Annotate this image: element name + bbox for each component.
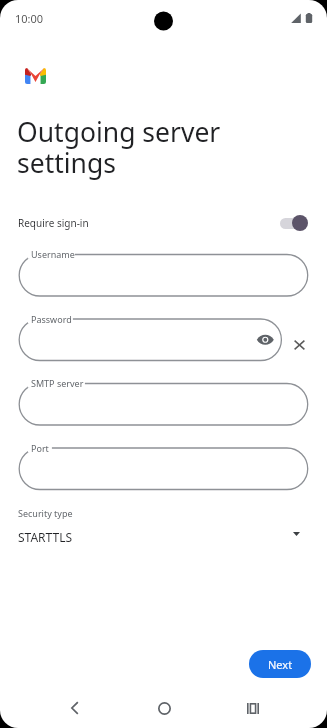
button[interactable]: Username bbox=[0, 0, 327, 728]
button[interactable]: SMTP server bbox=[0, 0, 327, 728]
staticText: Security type bbox=[18, 507, 73, 519]
staticText: Port bbox=[31, 442, 49, 454]
staticText: Username bbox=[31, 248, 75, 260]
button[interactable]: Recents bbox=[208, 688, 327, 728]
staticText: Next bbox=[268, 657, 293, 672]
button[interactable]: Port bbox=[0, 0, 327, 728]
staticText: Outgoing server settings bbox=[17, 114, 221, 181]
button[interactable]: Security type bbox=[0, 503, 327, 553]
button[interactable]: Home bbox=[118, 688, 208, 728]
staticText: Require sign-in bbox=[18, 216, 89, 230]
button[interactable]: Back bbox=[0, 688, 118, 728]
staticText: Password bbox=[31, 313, 72, 325]
button[interactable]: Require sign-in bbox=[0, 208, 327, 238]
button[interactable]: Clear password bbox=[287, 333, 311, 357]
staticText: SMTP server bbox=[31, 377, 84, 389]
staticText: STARTTLS bbox=[18, 529, 73, 545]
button[interactable]: Next bbox=[249, 650, 311, 678]
staticText: 10:00 bbox=[15, 11, 44, 26]
